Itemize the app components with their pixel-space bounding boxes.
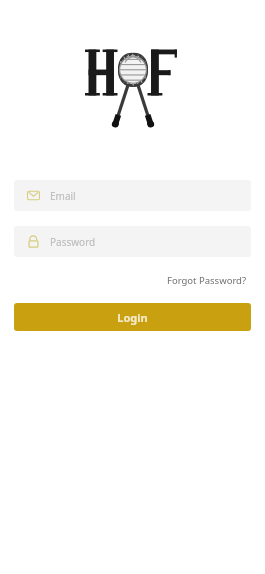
staticText: Login bbox=[117, 310, 148, 325]
other: Email bbox=[27, 189, 40, 202]
other: Password bbox=[27, 235, 40, 248]
button[interactable]: Email bbox=[14, 180, 251, 211]
staticText: Password bbox=[50, 235, 96, 249]
button[interactable]: Forgot Password? bbox=[165, 272, 249, 289]
button[interactable]: Password bbox=[14, 226, 251, 257]
staticText: Email bbox=[50, 189, 76, 203]
button[interactable]: Login bbox=[14, 303, 251, 331]
staticText: Forgot Password? bbox=[167, 274, 247, 287]
